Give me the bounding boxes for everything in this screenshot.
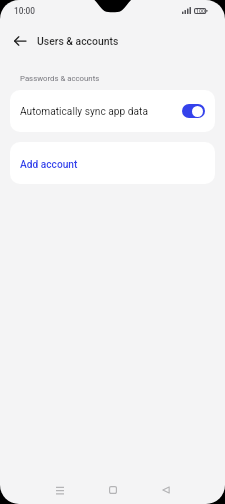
button[interactable]: Automatically sync app data: [10, 90, 215, 132]
staticText: 10:00: [14, 6, 36, 16]
staticText: Passwords & accounts: [20, 74, 100, 83]
button[interactable]: Recent apps: [43, 473, 76, 504]
button[interactable]: Home: [96, 473, 129, 504]
staticText: Users & accounts: [37, 35, 119, 47]
button[interactable]: Back: [149, 473, 182, 504]
staticText: Automatically sync app data: [20, 106, 148, 118]
button[interactable]: Add account: [10, 142, 215, 184]
staticText: 100: [196, 8, 205, 14]
button[interactable]: Automatically sync app data toggle: [182, 104, 205, 118]
button[interactable]: Back: [6, 28, 34, 54]
staticText: Add account: [20, 159, 78, 171]
